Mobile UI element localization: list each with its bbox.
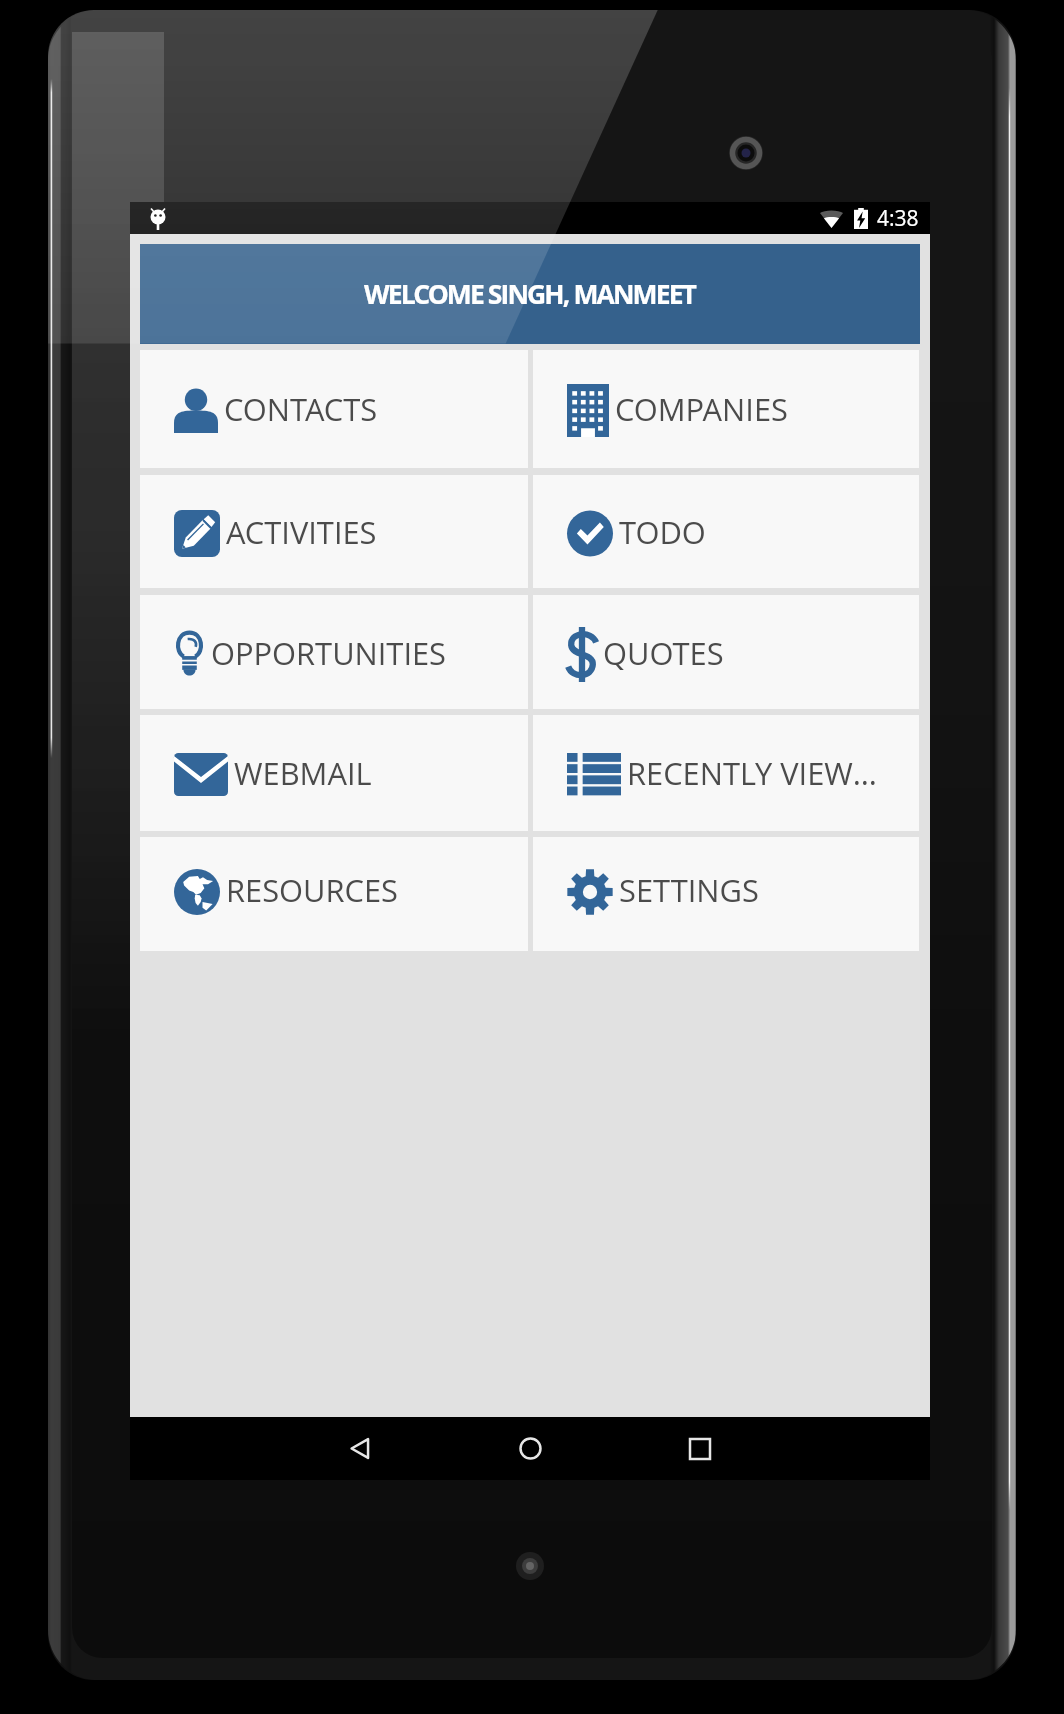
button[interactable]: SETTINGS (533, 837, 919, 951)
staticText: TODO (619, 511, 1005, 553)
button[interactable]: ACTIVITIES (140, 475, 528, 588)
button[interactable]: RECENTLY VIEW… (533, 715, 919, 831)
button[interactable]: Back (304, 1417, 416, 1480)
button[interactable]: QUOTES (533, 595, 919, 709)
staticText: ACTIVITIES (226, 511, 614, 553)
button[interactable]: RESOURCES (140, 837, 528, 951)
staticText: CONTACTS (224, 388, 612, 430)
button[interactable]: OPPORTUNITIES (140, 595, 528, 709)
button[interactable]: Home (474, 1417, 586, 1480)
button[interactable]: WELCOME SINGH, MANMEET (140, 244, 920, 344)
staticText: SETTINGS (619, 869, 1005, 911)
staticText: 4:38 (877, 204, 919, 233)
button[interactable]: CONTACTS (140, 350, 528, 468)
staticText: RESOURCES (226, 869, 614, 911)
staticText: WEBMAIL (234, 752, 622, 794)
staticText: OPPORTUNITIES (211, 632, 599, 674)
staticText: RECENTLY VIEW… (627, 752, 1013, 794)
staticText: QUOTES (603, 632, 989, 674)
staticText: WELCOME SINGH, MANMEET (364, 276, 696, 312)
button[interactable]: WEBMAIL (140, 715, 528, 831)
staticText: COMPANIES (615, 388, 1001, 430)
button[interactable]: TODO (533, 475, 919, 588)
button[interactable]: Recent apps (644, 1417, 756, 1480)
button[interactable]: COMPANIES (533, 350, 919, 468)
